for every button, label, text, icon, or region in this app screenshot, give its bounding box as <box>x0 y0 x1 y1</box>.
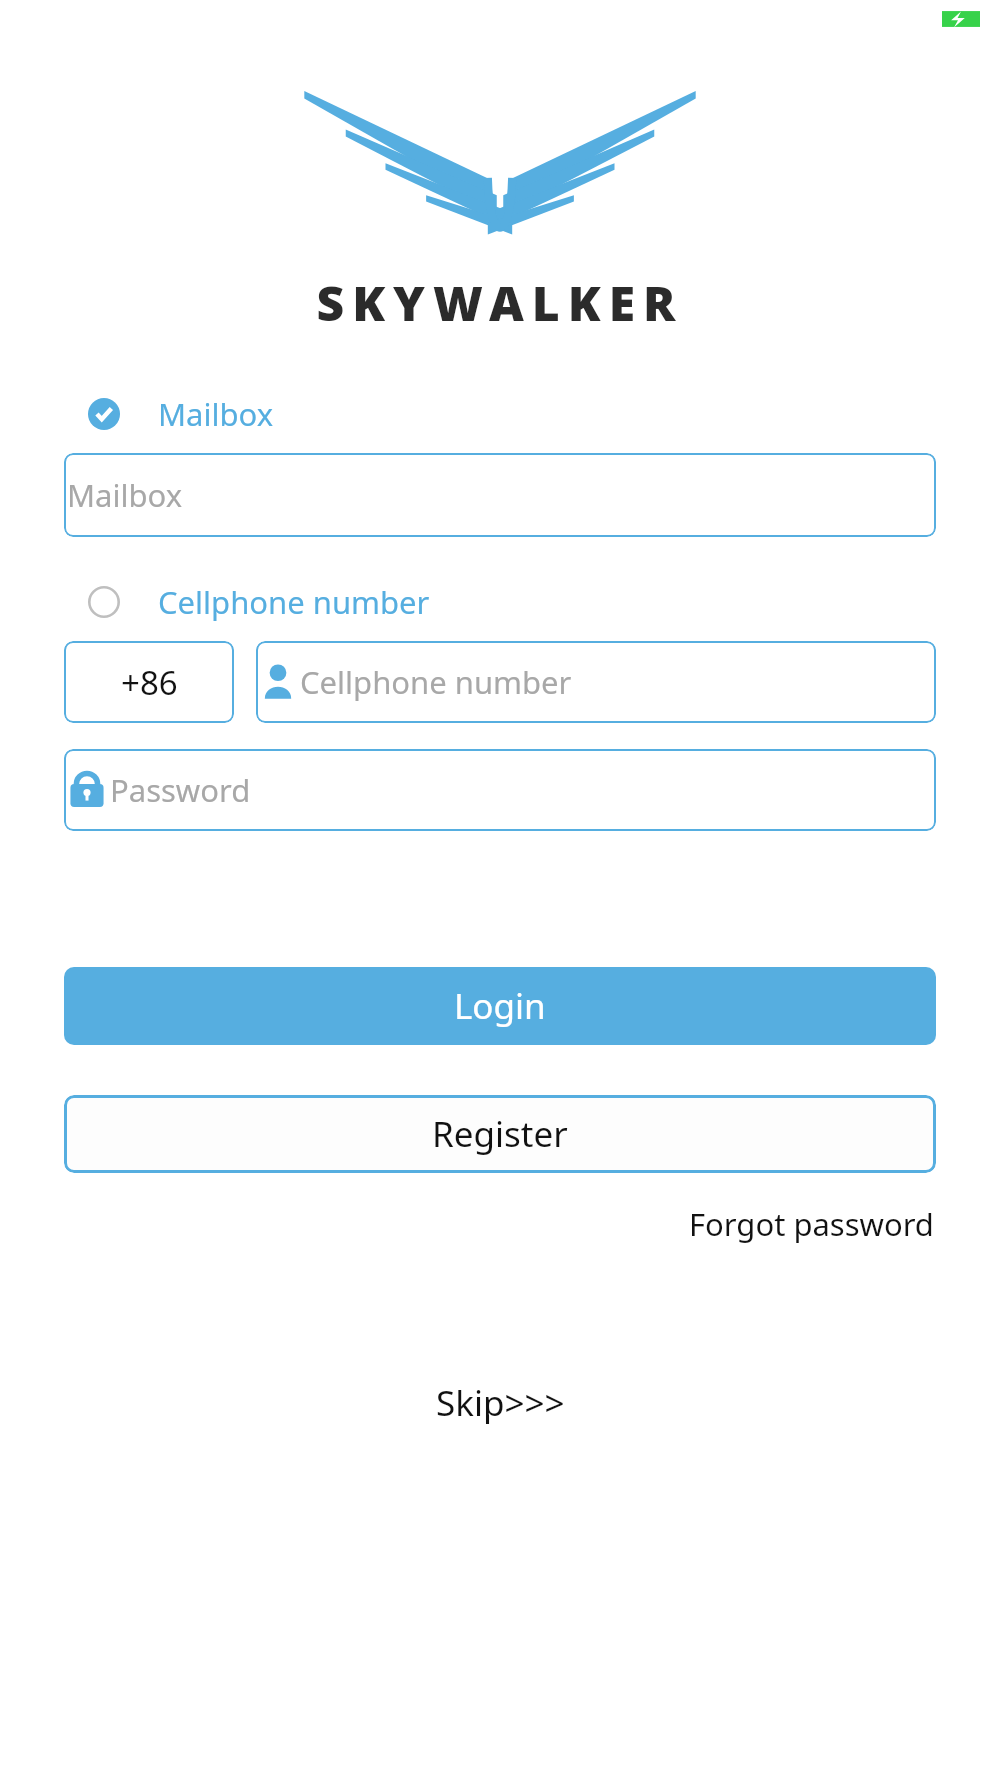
button[interactable]: Cellphone number <box>256 641 936 723</box>
button[interactable]: Password <box>64 749 936 831</box>
staticText: Mailbox <box>67 474 183 516</box>
staticText: Cellphone number <box>300 661 572 703</box>
staticText: Forgot password <box>689 1203 934 1245</box>
staticText: Mailbox <box>158 393 274 435</box>
button[interactable]: Register <box>64 1095 936 1173</box>
staticText: +86 <box>121 660 178 705</box>
button[interactable]: Mailbox <box>0 385 1000 443</box>
other: Battery charging <box>942 8 980 30</box>
staticText: Password <box>110 769 251 811</box>
staticText: Login <box>454 982 546 1030</box>
button[interactable]: Mailbox <box>64 453 936 537</box>
button[interactable]: Skip>>> <box>420 1369 581 1437</box>
staticText: Skip>>> <box>436 1379 565 1427</box>
staticText: Cellphone number <box>158 581 430 623</box>
staticText: Register <box>432 1110 568 1158</box>
button[interactable]: Cellphone number <box>0 573 1000 631</box>
button[interactable]: Forgot password <box>683 1195 940 1253</box>
button[interactable]: Login <box>64 967 936 1045</box>
button[interactable]: +86 <box>64 641 234 723</box>
staticText: SKYWALKER <box>316 270 684 335</box>
